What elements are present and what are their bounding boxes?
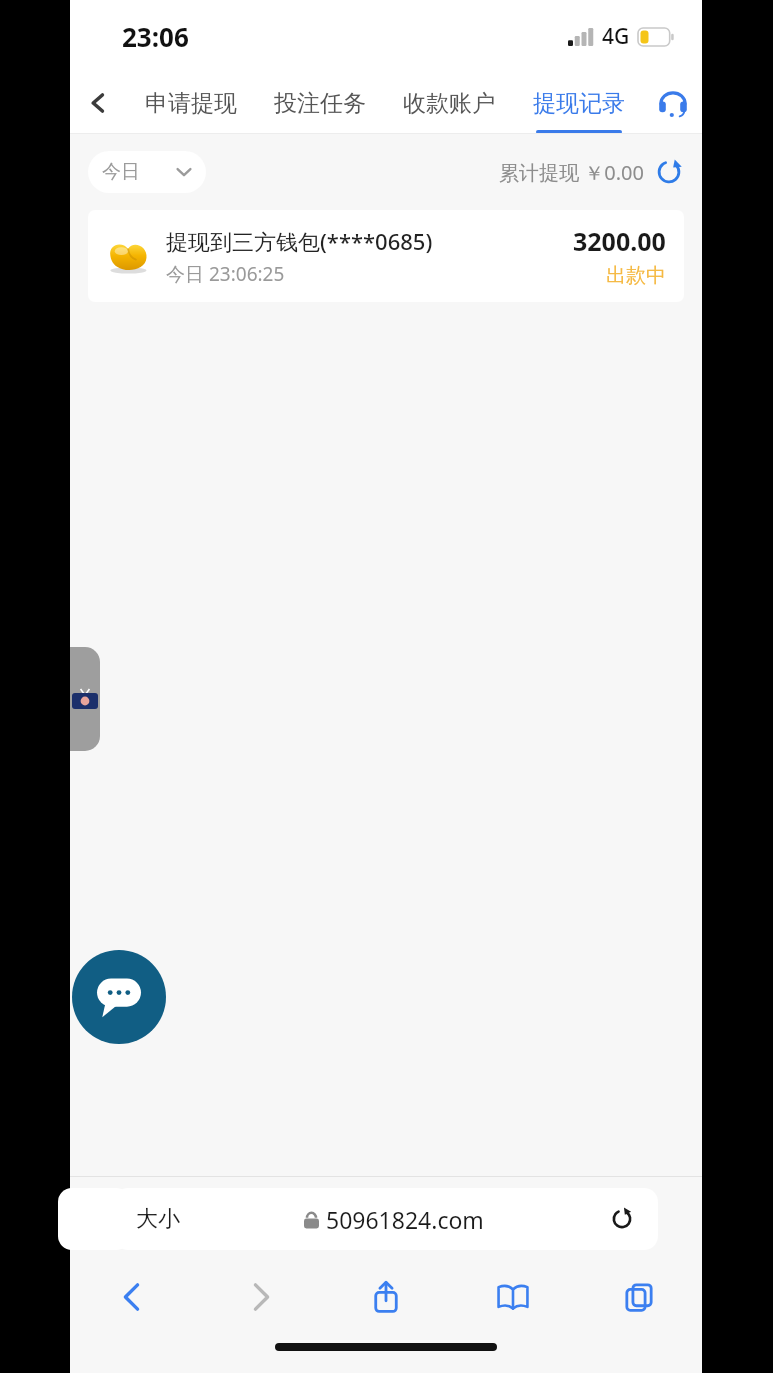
button[interactable]: Customer service chat — [72, 950, 166, 1044]
staticText: 今日 23:06:25 — [166, 261, 285, 287]
staticText: 提现到三方钱包(****0685) — [166, 226, 433, 256]
button[interactable]: 提现到三方钱包(****0685) — [88, 210, 684, 302]
staticText: 提现记录 — [533, 89, 625, 118]
button[interactable]: 投注任务 — [255, 72, 384, 134]
button[interactable]: 提现记录 — [514, 72, 644, 134]
button[interactable]: 大小 — [114, 1188, 658, 1250]
button[interactable]: Forward — [223, 1267, 297, 1327]
button[interactable]: Support — [644, 72, 702, 134]
button[interactable]: Reload — [608, 1205, 636, 1233]
button[interactable]: 今日 — [88, 151, 206, 193]
staticText: 累计提现 ￥0.00 — [499, 159, 644, 186]
button[interactable]: Refresh — [654, 157, 684, 187]
staticText: 大小 — [136, 1205, 180, 1233]
button[interactable]: 申请提现 — [126, 72, 255, 134]
button[interactable]: 收款账户 — [384, 72, 514, 134]
staticText: 4G — [602, 22, 630, 51]
staticText: 今日 — [102, 160, 140, 184]
staticText: 投注任务 — [274, 89, 366, 118]
staticText: 50961824.com — [326, 1204, 484, 1235]
staticText: 3200.00 — [573, 224, 666, 258]
staticText: 23:06 — [122, 19, 189, 54]
button[interactable]: Share — [349, 1267, 423, 1327]
button[interactable]: Back — [96, 1267, 170, 1327]
staticText: 申请提现 — [145, 89, 237, 118]
button[interactable]: Back — [70, 72, 126, 134]
staticText: 出款中 — [606, 263, 666, 288]
button[interactable]: Bookmarks — [476, 1267, 550, 1327]
button[interactable]: Live stream — [70, 647, 100, 751]
staticText: 收款账户 — [403, 89, 495, 118]
button[interactable]: Tabs — [602, 1267, 676, 1327]
